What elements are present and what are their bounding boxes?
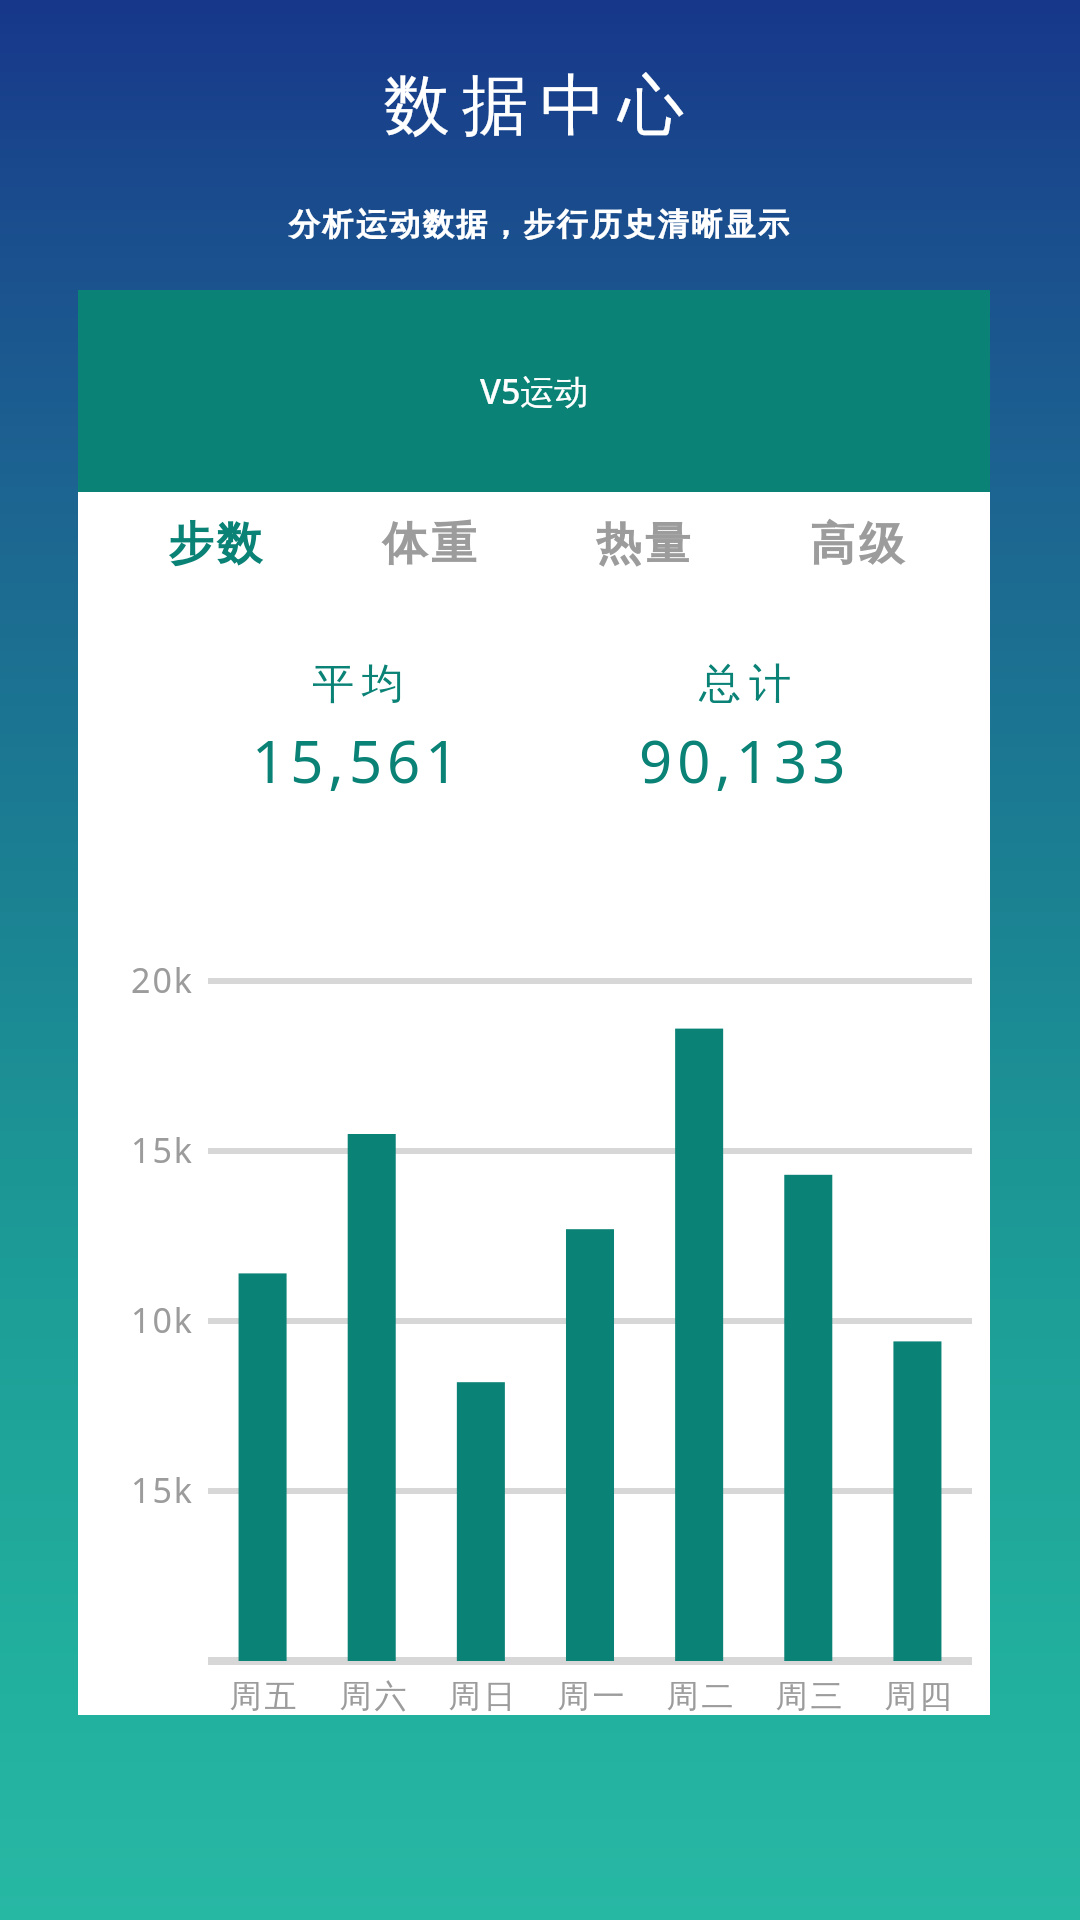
staticText: 90,133 (639, 721, 851, 800)
button[interactable]: 高级 (750, 492, 964, 596)
staticText: 热量 (594, 516, 692, 573)
staticText: 总计 (695, 658, 795, 711)
staticText: 数据中心 (0, 64, 1080, 147)
staticText: 周二 (665, 1676, 735, 1715)
staticText: 分析运动数据，步行历史清晰显示 (0, 205, 1080, 244)
staticText: V5运动 (480, 368, 589, 414)
staticText: 周四 (883, 1676, 953, 1715)
staticText: 周一 (556, 1676, 626, 1715)
staticText: 步数 (166, 516, 264, 573)
staticText: 周日 (447, 1676, 517, 1715)
button[interactable]: 步数 (108, 492, 322, 596)
staticText: 15k (104, 1127, 194, 1173)
staticText: 10k (104, 1297, 194, 1343)
staticText: 20k (104, 957, 194, 1003)
staticText: 高级 (808, 516, 906, 573)
staticText: 15,561 (252, 721, 464, 800)
staticText: 周五 (228, 1676, 298, 1715)
staticText: 平均 (308, 658, 408, 711)
button[interactable]: 热量 (536, 492, 750, 596)
staticText: 体重 (380, 516, 478, 573)
button[interactable]: 体重 (322, 492, 536, 596)
button[interactable]: V5运动 (78, 290, 990, 492)
staticText: 周三 (774, 1676, 844, 1715)
staticText: 15k (104, 1467, 194, 1513)
staticText: 周六 (338, 1676, 408, 1715)
